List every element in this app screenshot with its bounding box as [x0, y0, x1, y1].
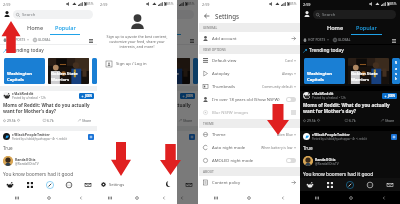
button[interactable]: Autoplay	[199, 67, 300, 80]
button[interactable]: JOIN	[79, 93, 94, 99]
button[interactable]: Back	[266, 191, 300, 204]
button[interactable]: Change layout	[188, 37, 195, 44]
button[interactable]: Communities	[320, 178, 340, 191]
button[interactable]: Theme	[199, 128, 300, 141]
button[interactable]: Account	[302, 9, 312, 19]
button[interactable]: Save	[189, 134, 195, 140]
staticText: GENERAL	[203, 26, 218, 30]
staticText: 29.5k	[307, 118, 316, 123]
staticText: Share	[82, 118, 92, 123]
button[interactable]: Change layout	[390, 37, 397, 44]
staticText: 85%	[167, 2, 174, 6]
staticText: Settings	[215, 12, 240, 20]
button[interactable]: Washington Capitals	[4, 58, 45, 84]
button[interactable]: Thumbnails	[199, 80, 300, 93]
button[interactable]: 6.7k	[345, 118, 356, 123]
button[interactable]: Home	[300, 178, 320, 191]
button[interactable]: Back	[203, 12, 211, 20]
button[interactable]: I'm over 18 years old (Show NSFW)	[199, 93, 300, 106]
staticText: Share	[183, 118, 193, 123]
button[interactable]: Inbox	[78, 178, 97, 191]
button[interactable]: Recent apps	[199, 191, 232, 204]
staticText: True	[303, 145, 313, 151]
staticText: Moms of Reddit: What do you actually wan…	[177, 102, 195, 114]
button[interactable]: Save	[88, 134, 94, 140]
button[interactable]: Washington Area	[392, 58, 400, 84]
button[interactable]: AMOLED night mode	[199, 154, 300, 167]
button[interactable]: Back	[177, 191, 198, 204]
button[interactable]: Chat	[59, 178, 78, 191]
button[interactable]: Create post	[40, 178, 59, 191]
button[interactable]: Content policy	[199, 176, 300, 189]
staticText: Posted by u/sdsbkjhyuahsqqaa • 4h • i.re…	[12, 137, 67, 141]
button[interactable]: Washington Capitals	[304, 58, 345, 84]
button[interactable]: Home	[320, 20, 351, 35]
staticText: Blur NSFW images	[212, 110, 291, 116]
button[interactable]: Golden State Warriors	[348, 58, 389, 84]
button[interactable]: Home	[123, 191, 150, 204]
button[interactable]: Auto night mode	[199, 141, 300, 154]
button[interactable]: Share	[381, 118, 395, 123]
button[interactable]: Default view	[199, 54, 300, 67]
staticText: Golden State Warriors	[177, 71, 179, 82]
button[interactable]: Popular	[50, 20, 80, 35]
button[interactable]: Create post	[340, 178, 360, 191]
staticText: Settings	[109, 182, 125, 187]
button[interactable]: Home	[0, 178, 20, 191]
staticText: 2:59	[202, 2, 210, 7]
button[interactable]: Popular	[177, 20, 181, 35]
button[interactable]: Settings	[101, 180, 125, 189]
button[interactable]: Add account	[199, 32, 300, 45]
button[interactable]: Washington Area	[92, 58, 97, 84]
button[interactable]: Night mode	[165, 180, 173, 188]
button[interactable]: Share	[78, 118, 92, 123]
button[interactable]: Change layout	[87, 37, 94, 44]
button[interactable]: 29.5k	[3, 118, 20, 123]
button[interactable]: Inbox	[179, 178, 198, 191]
button[interactable]: Home	[20, 20, 50, 35]
staticText: Golden State Warriors	[51, 71, 78, 82]
staticText: r/BlackPeopleTwitter	[312, 132, 350, 137]
button[interactable]: Inbox	[380, 178, 400, 191]
button[interactable]: Golden State Warriors	[177, 58, 190, 84]
button[interactable]: Blur NSFW images	[199, 106, 300, 119]
button[interactable]: Account	[2, 9, 12, 19]
button[interactable]: 6.7k	[43, 118, 54, 123]
button[interactable]: Home	[334, 191, 367, 204]
staticText: Default view	[212, 58, 285, 64]
button[interactable]: Recent apps	[0, 191, 33, 204]
staticText: ABOUT	[203, 170, 214, 174]
button[interactable]: Back	[65, 191, 97, 204]
button[interactable]: Chat	[360, 178, 380, 191]
button[interactable]: Search	[13, 10, 93, 19]
button[interactable]: Sign up / Log in	[97, 58, 177, 70]
button[interactable]: Save	[391, 134, 397, 140]
button[interactable]: Home	[33, 191, 65, 204]
button[interactable]: JOIN	[180, 93, 195, 99]
button[interactable]: Share	[179, 118, 193, 123]
button[interactable]: Back	[367, 191, 400, 204]
button[interactable]: Home	[232, 191, 266, 204]
button[interactable]: Popular	[351, 20, 382, 35]
staticText: GLOBAL	[338, 38, 351, 42]
staticText: JOIN	[186, 94, 193, 98]
button[interactable]: 29.5k	[303, 118, 320, 123]
staticText: Add account	[212, 36, 291, 42]
staticText: 29.5k	[7, 118, 16, 123]
button[interactable]: Golden State Warriors	[48, 58, 89, 84]
button[interactable]: Recent apps	[97, 191, 123, 204]
button[interactable]: Search	[313, 10, 396, 19]
button[interactable]: Communities	[20, 178, 40, 191]
staticText: THEME	[203, 122, 214, 126]
staticText: Search	[22, 12, 36, 18]
staticText: Theme	[212, 132, 277, 138]
staticText: @RandallOtisTV	[15, 162, 39, 166]
staticText: @RandallOtisTV	[315, 162, 339, 166]
staticText: 85%	[390, 2, 397, 6]
button[interactable]: Washington Area	[193, 58, 198, 84]
button[interactable]: Recent apps	[300, 191, 334, 204]
button[interactable]: JOIN	[382, 93, 397, 99]
button[interactable]: Back	[150, 191, 177, 204]
